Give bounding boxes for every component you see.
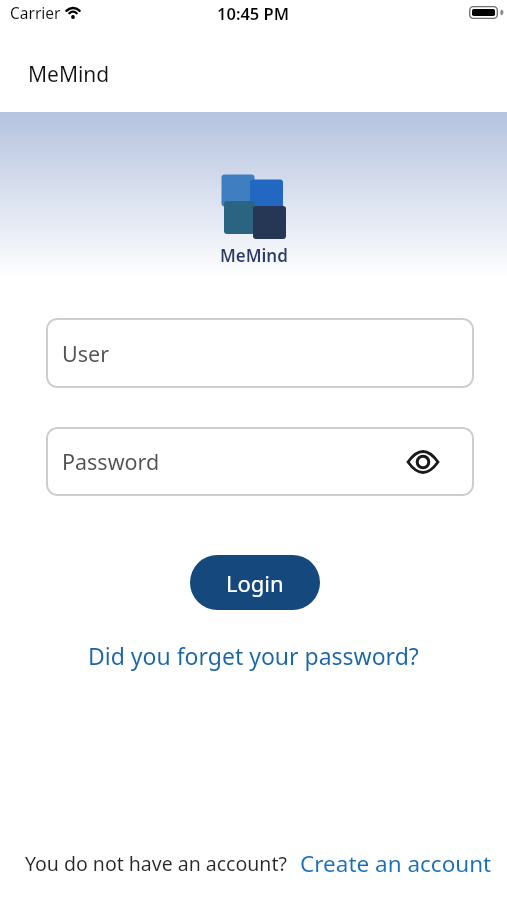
button[interactable]: User xyxy=(46,318,474,388)
staticText: MeMind xyxy=(220,244,288,267)
staticText: 10:45 PM xyxy=(217,2,290,24)
button[interactable]: Did you forget your password? xyxy=(88,640,419,671)
staticText: User xyxy=(62,339,110,368)
staticText: Login xyxy=(226,568,284,598)
button[interactable]: Password xyxy=(46,427,474,496)
staticText: Password xyxy=(62,447,160,476)
button[interactable]: Create an account xyxy=(300,848,492,879)
staticText: You do not have an account? xyxy=(25,850,287,877)
staticText: MeMind xyxy=(28,60,110,89)
staticText: Carrier xyxy=(10,2,61,23)
button[interactable]: Login xyxy=(190,555,320,610)
